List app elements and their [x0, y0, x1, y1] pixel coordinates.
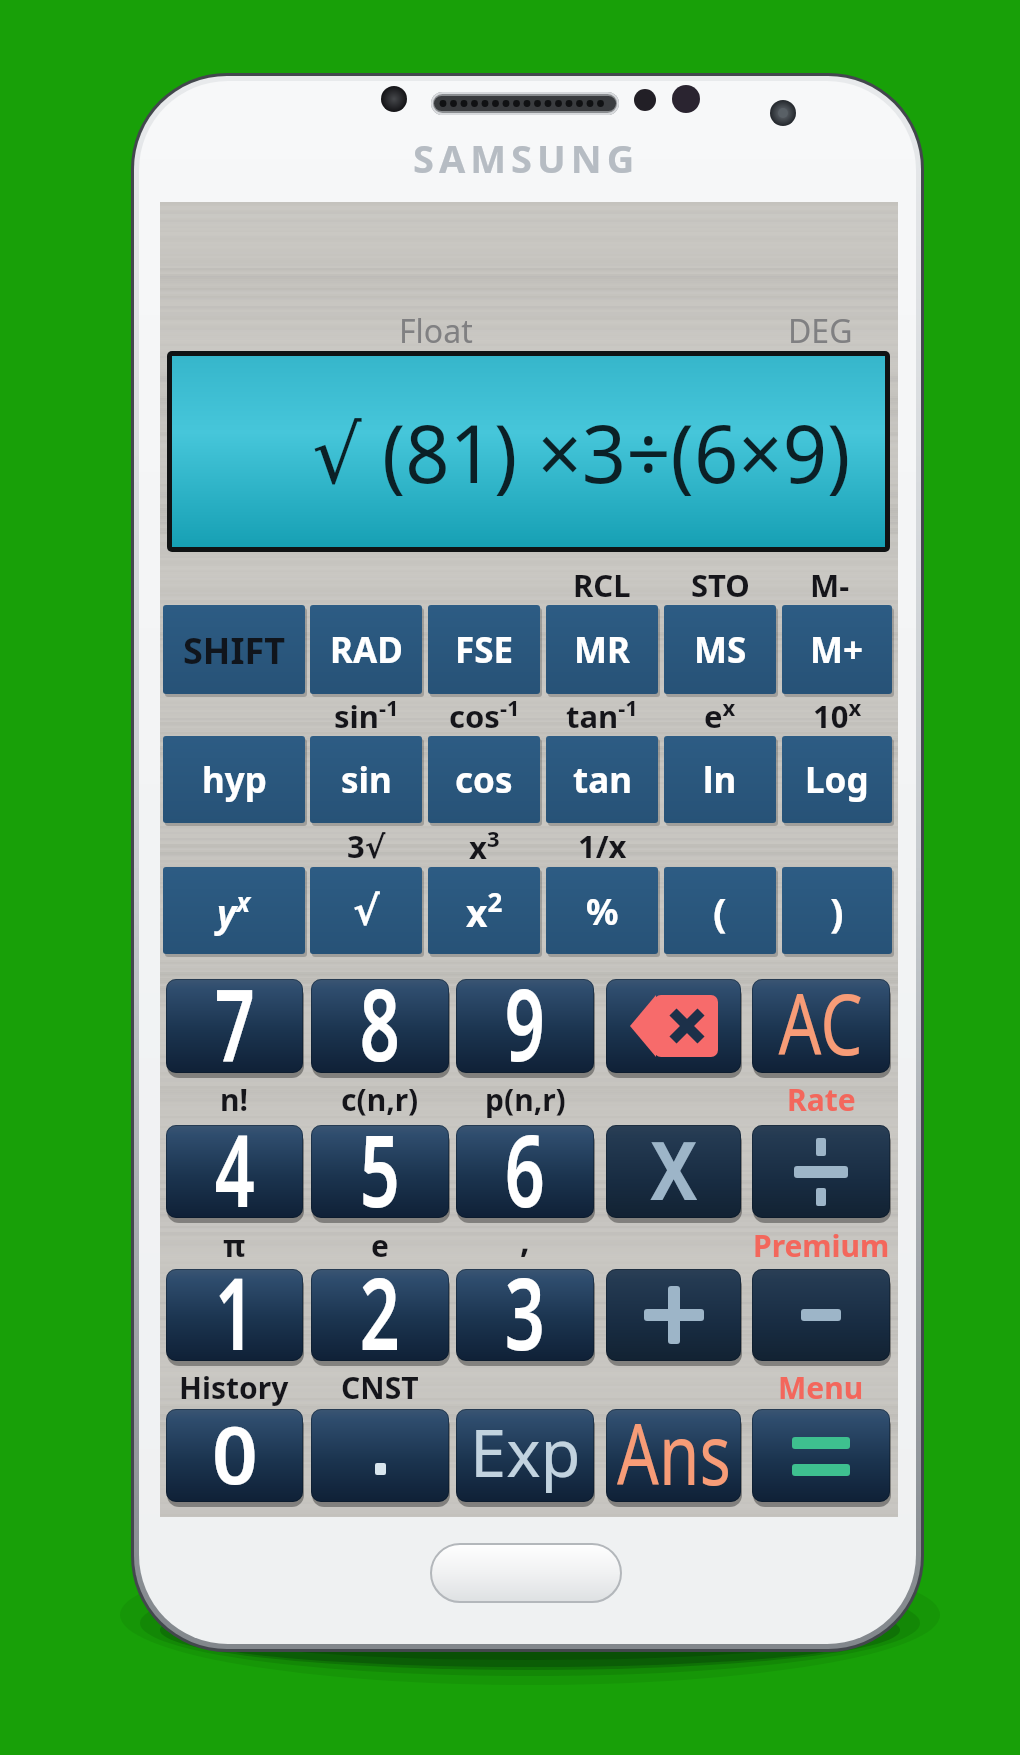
button[interactable] — [311, 1409, 449, 1502]
staticText: 9 — [505, 954, 545, 1090]
staticText: c(n,r) — [341, 1079, 419, 1120]
button[interactable]: 4 — [166, 1125, 303, 1218]
staticText: 6 — [505, 1100, 545, 1236]
staticText: 1 — [215, 1243, 255, 1379]
staticText: SAMSUNG — [413, 132, 640, 184]
button[interactable]: ( — [664, 867, 776, 954]
staticText: Rate — [787, 1079, 856, 1120]
button[interactable]: MR — [546, 605, 658, 694]
button[interactable]: 3 — [456, 1269, 594, 1361]
staticText: tan-1 — [566, 692, 638, 738]
button[interactable]: Ans — [606, 1409, 741, 1502]
staticText: RCL — [573, 564, 631, 606]
staticText: Log — [805, 756, 869, 804]
staticText: Exp — [470, 1408, 581, 1497]
staticText: STO — [691, 564, 750, 606]
staticText: % — [586, 887, 619, 936]
button[interactable]: FSE — [428, 605, 540, 694]
staticText: e — [371, 1225, 389, 1266]
staticText: 0 — [212, 1398, 258, 1507]
staticText: 8 — [360, 954, 400, 1090]
staticText: √ (81) ×3÷(6×9) — [312, 397, 851, 506]
staticText: 3 — [505, 1243, 545, 1379]
button[interactable]: 0 — [166, 1409, 303, 1502]
button[interactable]: X — [606, 1125, 741, 1218]
button[interactable]: 8 — [311, 979, 449, 1073]
button[interactable]: AC — [752, 979, 890, 1073]
button[interactable] — [752, 1269, 890, 1361]
staticText: ( — [713, 884, 727, 938]
staticText: MS — [694, 626, 747, 674]
staticText: 7 — [215, 954, 255, 1090]
staticText: SHIFT — [183, 626, 285, 675]
staticText: History — [179, 1367, 289, 1408]
button[interactable] — [752, 1125, 890, 1218]
staticText: √ — [353, 888, 380, 935]
button[interactable]: % — [546, 867, 658, 954]
staticText: Float — [399, 309, 473, 353]
button[interactable] — [752, 1409, 890, 1502]
staticText: π — [223, 1225, 246, 1266]
staticText: yx — [217, 884, 251, 938]
button[interactable]: 1 — [166, 1269, 303, 1361]
staticText: hyp — [202, 756, 267, 804]
staticText: 5 — [360, 1100, 400, 1236]
button[interactable]: 6 — [456, 1125, 594, 1218]
staticText: Menu — [778, 1367, 864, 1408]
button[interactable]: 5 — [311, 1125, 449, 1218]
staticText: cos — [455, 756, 513, 804]
staticText: DEG — [788, 309, 853, 353]
button[interactable]: Log — [782, 736, 892, 823]
button[interactable]: 9 — [456, 979, 594, 1073]
staticText: RAD — [330, 626, 403, 674]
button[interactable]: SHIFT — [163, 605, 305, 694]
staticText: CNST — [341, 1367, 419, 1408]
button[interactable]: hyp — [163, 736, 305, 823]
staticText: x2 — [466, 884, 503, 938]
staticText: 3√ — [347, 825, 386, 867]
button[interactable]: cos — [428, 736, 540, 823]
staticText: 10x — [813, 692, 862, 738]
staticText: ex — [704, 692, 736, 738]
button[interactable]: RAD — [310, 605, 422, 694]
staticText: ln — [703, 756, 737, 804]
staticText: p(n,r) — [485, 1079, 566, 1120]
button[interactable]: 7 — [166, 979, 303, 1073]
button[interactable]: 2 — [311, 1269, 449, 1361]
button[interactable]: sin — [310, 736, 422, 823]
staticText: ) — [830, 884, 844, 938]
button[interactable] — [430, 1543, 622, 1603]
button[interactable]: yx — [163, 867, 305, 954]
staticText: 4 — [215, 1100, 255, 1236]
staticText: Ans — [617, 1395, 731, 1509]
button[interactable]: ln — [664, 736, 776, 823]
button[interactable] — [606, 1269, 741, 1361]
staticText: M- — [810, 564, 850, 606]
staticText: tan — [573, 756, 632, 804]
staticText: 1/x — [578, 825, 627, 867]
staticText: n! — [220, 1079, 248, 1120]
staticText: M+ — [810, 626, 864, 674]
staticText: x3 — [469, 823, 500, 869]
button[interactable]: ) — [782, 867, 892, 954]
staticText: MR — [574, 626, 630, 674]
staticText: , — [520, 1217, 530, 1263]
staticText: AC — [779, 965, 863, 1079]
staticText: X — [650, 1114, 698, 1223]
staticText: sin-1 — [334, 692, 399, 738]
button[interactable]: MS — [664, 605, 776, 694]
button[interactable]: x2 — [428, 867, 540, 954]
button[interactable]: Exp — [456, 1409, 594, 1502]
button[interactable]: √ — [310, 867, 422, 954]
staticText: 2 — [360, 1243, 400, 1379]
button[interactable]: M+ — [782, 605, 892, 694]
staticText: sin — [341, 756, 392, 804]
staticText: FSE — [455, 626, 514, 674]
button[interactable]: tan — [546, 736, 658, 823]
button[interactable] — [606, 979, 741, 1073]
staticText: cos-1 — [449, 692, 520, 738]
staticText: Premium — [753, 1225, 890, 1266]
